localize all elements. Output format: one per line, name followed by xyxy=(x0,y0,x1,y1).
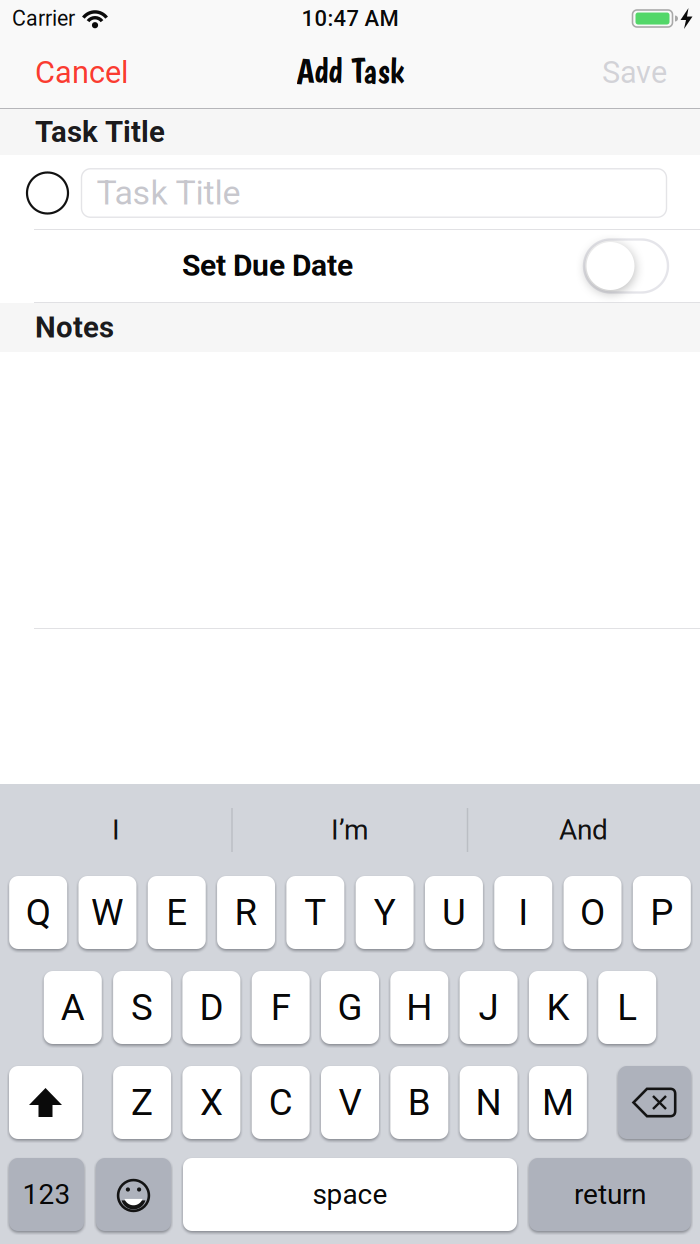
staticText: R xyxy=(234,891,257,934)
button[interactable]: C xyxy=(252,1066,310,1139)
button[interactable]: F xyxy=(252,971,310,1044)
button[interactable]: X xyxy=(182,1066,240,1139)
button[interactable]: And xyxy=(559,814,608,846)
button[interactable]: Cancel xyxy=(35,54,128,90)
staticText: return xyxy=(574,1178,646,1211)
staticText: H xyxy=(406,986,432,1029)
staticText: T xyxy=(304,891,326,934)
staticText: X xyxy=(200,1081,223,1124)
staticText: Q xyxy=(26,891,51,934)
button[interactable]: Set Due Date toggle xyxy=(584,239,668,292)
staticText: Z xyxy=(131,1081,153,1124)
staticText: Add Task xyxy=(296,49,403,91)
staticText: F xyxy=(271,986,291,1029)
button[interactable]: I’m xyxy=(331,814,369,846)
staticText: E xyxy=(166,891,187,934)
staticText: Y xyxy=(374,891,396,934)
button[interactable]: Save xyxy=(602,54,667,90)
staticText: M xyxy=(542,1081,574,1124)
button[interactable]: Z xyxy=(113,1066,171,1139)
staticText: Save xyxy=(602,54,667,90)
staticText: B xyxy=(408,1081,431,1124)
staticText: W xyxy=(91,891,124,934)
button[interactable]: K xyxy=(529,971,587,1044)
staticText: I xyxy=(518,891,528,934)
button[interactable]: Emoji xyxy=(96,1158,171,1231)
staticText: Set Due Date xyxy=(182,248,353,283)
button[interactable]: Task Title text field xyxy=(81,169,666,217)
staticText: 123 xyxy=(22,1178,70,1211)
staticText: K xyxy=(546,986,569,1029)
button[interactable]: J xyxy=(460,971,518,1044)
button[interactable]: Delete xyxy=(618,1066,691,1139)
staticText: Notes xyxy=(35,310,114,345)
button[interactable]: S xyxy=(113,971,171,1044)
button[interactable]: I xyxy=(112,814,120,846)
staticText: space xyxy=(312,1178,387,1211)
staticText: I xyxy=(112,814,120,846)
staticText: D xyxy=(199,986,223,1029)
staticText: J xyxy=(479,986,499,1029)
staticText: A xyxy=(61,986,85,1029)
staticText: Task Title xyxy=(96,173,240,213)
staticText: L xyxy=(617,986,637,1029)
staticText: C xyxy=(269,1081,293,1124)
button[interactable]: I xyxy=(494,876,552,949)
button[interactable]: P xyxy=(633,876,691,949)
staticText: U xyxy=(442,891,466,934)
staticText: Task Title xyxy=(35,115,165,149)
button[interactable]: return xyxy=(529,1158,691,1231)
button[interactable]: G xyxy=(321,971,379,1044)
staticText: And xyxy=(559,814,608,846)
button[interactable]: A xyxy=(44,971,102,1044)
button[interactable]: B xyxy=(390,1066,448,1139)
button[interactable]: W xyxy=(78,876,136,949)
button[interactable]: Y xyxy=(356,876,414,949)
staticText: P xyxy=(650,891,673,934)
button[interactable]: L xyxy=(598,971,656,1044)
button[interactable]: O xyxy=(563,876,621,949)
button[interactable]: Complete task xyxy=(27,172,68,213)
button[interactable]: R xyxy=(217,876,275,949)
button[interactable]: D xyxy=(182,971,240,1044)
button[interactable]: E xyxy=(148,876,206,949)
staticText: Carrier xyxy=(12,6,75,31)
staticText: O xyxy=(580,891,605,934)
staticText: V xyxy=(338,1081,361,1124)
staticText: Cancel xyxy=(35,54,128,90)
staticText: I’m xyxy=(331,814,369,846)
button[interactable]: N xyxy=(460,1066,518,1139)
staticText: S xyxy=(131,986,153,1029)
button[interactable]: Numbers xyxy=(9,1158,84,1231)
staticText: N xyxy=(476,1081,502,1124)
staticText: G xyxy=(337,986,362,1029)
button[interactable]: V xyxy=(321,1066,379,1139)
button[interactable]: Q xyxy=(9,876,67,949)
button[interactable]: T xyxy=(286,876,344,949)
button[interactable]: M xyxy=(529,1066,587,1139)
staticText: 10:47 AM xyxy=(301,6,398,31)
button[interactable]: U xyxy=(425,876,483,949)
button[interactable]: space xyxy=(183,1158,517,1231)
button[interactable]: H xyxy=(390,971,448,1044)
button[interactable]: Shift xyxy=(9,1066,82,1139)
